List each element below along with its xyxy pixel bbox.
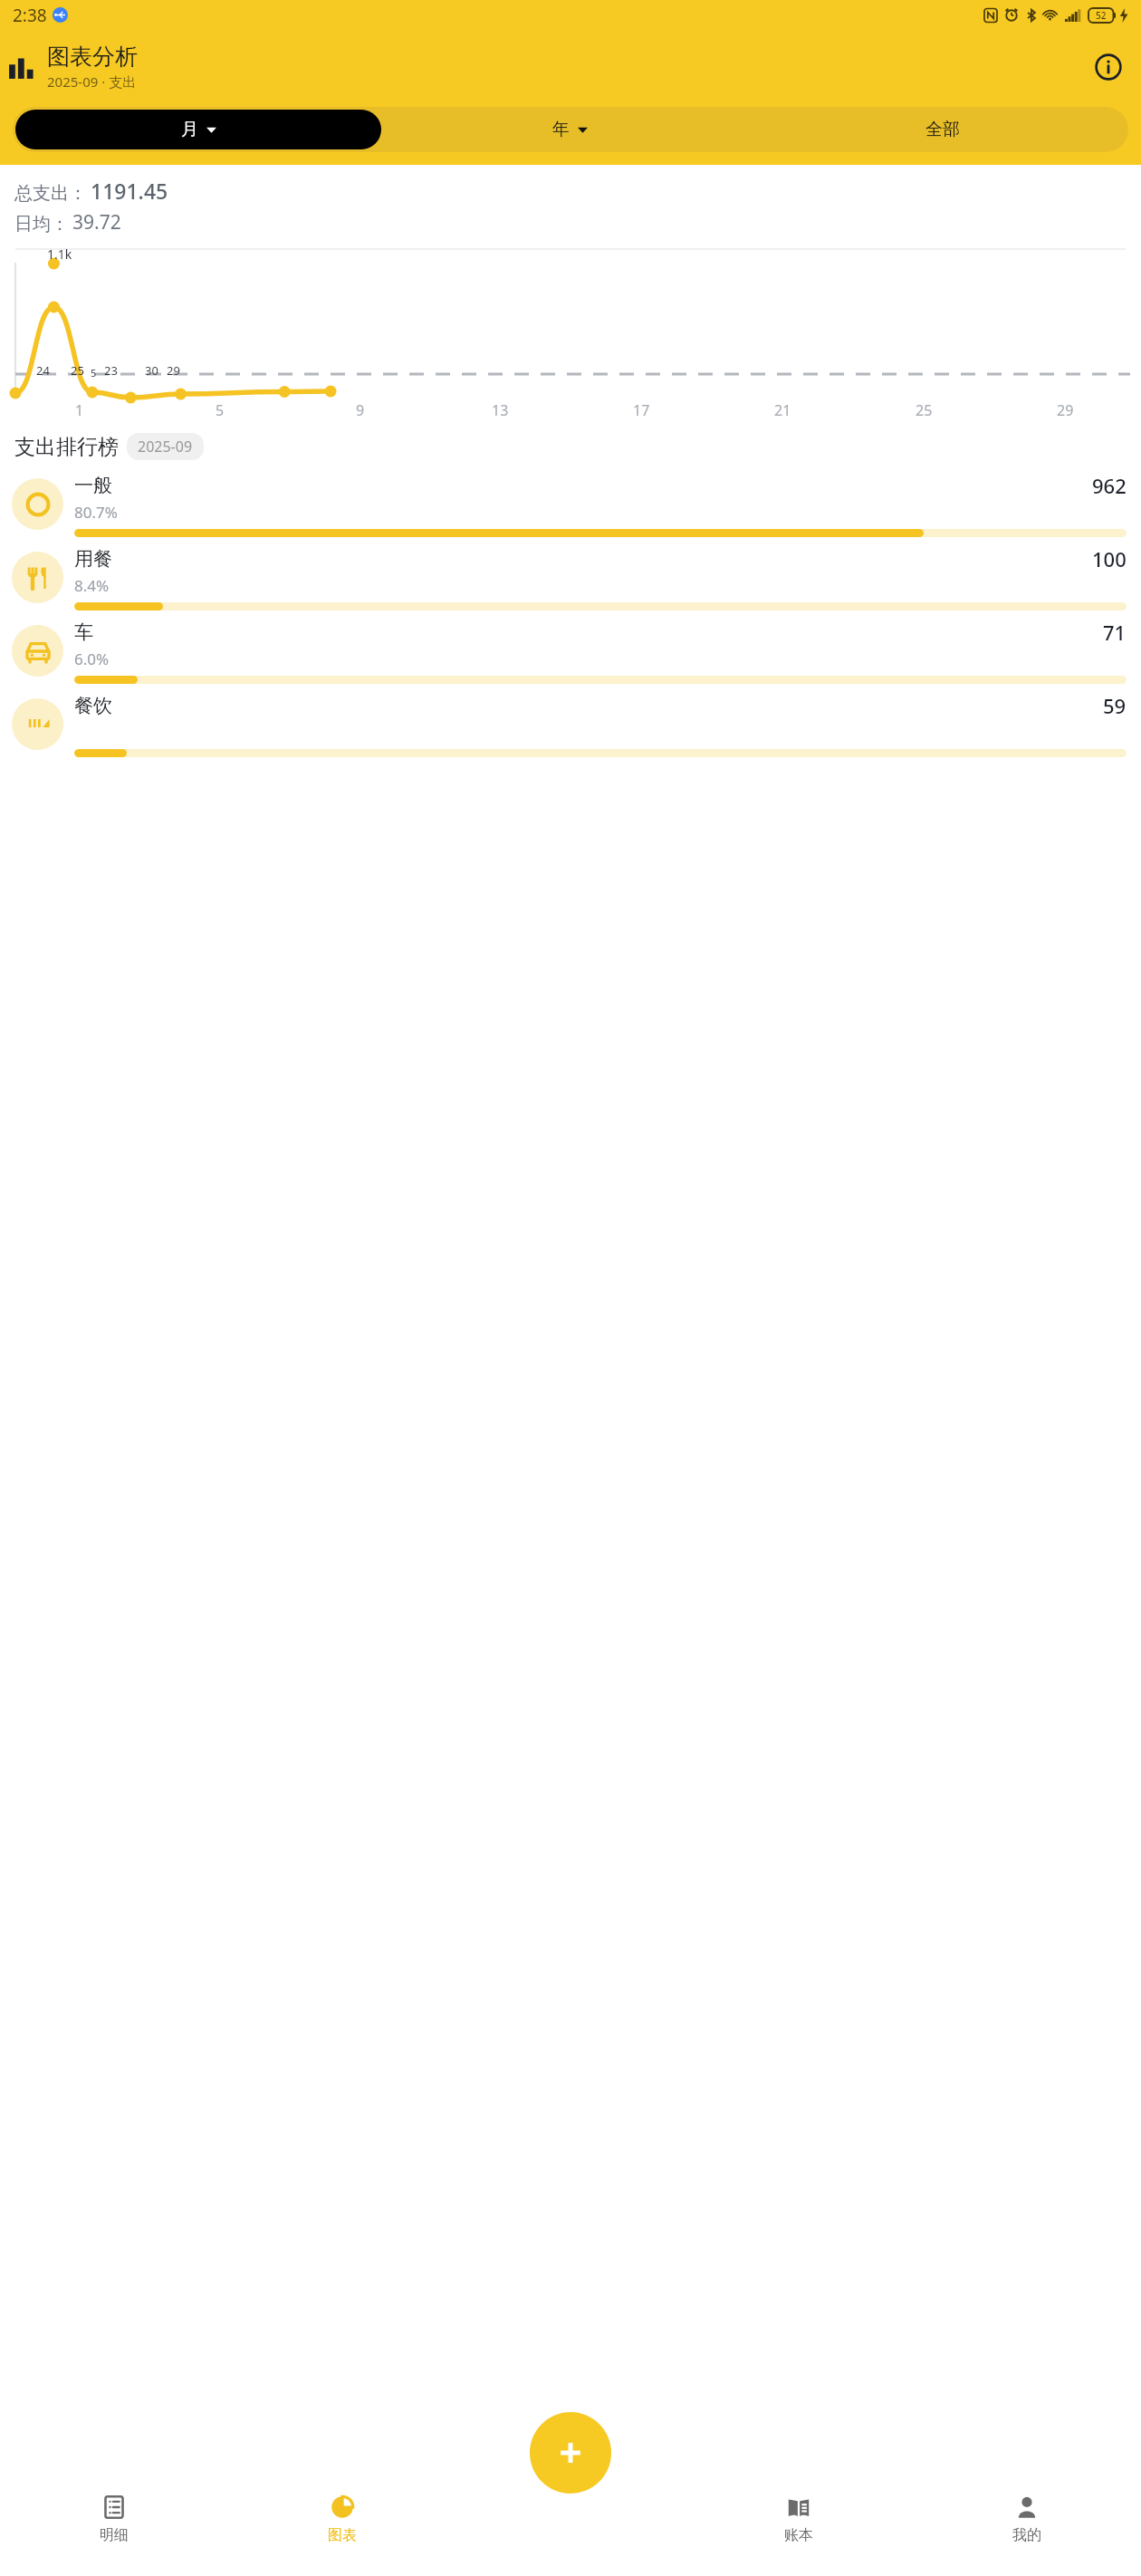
button[interactable]: 图表: [228, 2493, 456, 2546]
button[interactable]: 明细: [0, 2493, 228, 2546]
staticText: 29: [167, 362, 180, 379]
staticText: 5: [216, 400, 225, 420]
staticText: 明细: [100, 2526, 129, 2544]
staticText: 80.7%: [74, 502, 118, 523]
staticText: 6.0%: [74, 649, 110, 669]
button[interactable]: 月: [15, 110, 381, 149]
staticText: 年: [552, 119, 570, 140]
staticText: 25: [71, 362, 84, 379]
staticText: 日均：: [14, 213, 69, 235]
staticText: 17: [633, 400, 650, 420]
staticText: 25: [916, 400, 933, 420]
staticText: 1191.45: [91, 177, 168, 205]
staticText: 39.72: [72, 209, 121, 235]
staticText: 29: [1057, 400, 1074, 420]
staticText: 1.1k: [47, 245, 72, 263]
staticText: 图表: [328, 2526, 357, 2544]
staticText: 2025-09 · 支出: [47, 72, 137, 91]
button[interactable]: 用餐: [0, 541, 1141, 614]
staticText: 支出排行榜: [14, 434, 119, 460]
staticText: 我的: [1012, 2526, 1041, 2544]
staticText: 52: [1096, 9, 1107, 22]
staticText: 962: [1092, 472, 1127, 499]
staticText: 1: [75, 400, 84, 420]
staticText: 一般: [74, 474, 112, 497]
staticText: 车: [74, 620, 93, 644]
staticText: 24: [36, 362, 50, 379]
staticText: 21: [774, 400, 791, 420]
staticText: 总支出：: [14, 182, 87, 205]
staticText: 账本: [784, 2526, 813, 2544]
staticText: 9: [356, 400, 365, 420]
button[interactable]: 年: [384, 107, 756, 152]
staticText: 用餐: [74, 547, 112, 571]
button[interactable]: 餐饮: [0, 687, 1141, 761]
staticText: 2025-09: [138, 437, 193, 457]
staticText: 100: [1092, 545, 1127, 572]
button[interactable]: 全部: [756, 107, 1128, 152]
button[interactable]: 我的: [913, 2493, 1141, 2546]
staticText: 59: [1103, 692, 1127, 719]
staticText: 餐饮: [74, 694, 112, 717]
staticText: 71: [1103, 619, 1127, 646]
button[interactable]: Add record: [530, 2412, 611, 2494]
button[interactable]: 账本: [685, 2493, 913, 2546]
staticText: 13: [492, 400, 509, 420]
staticText: 月: [181, 119, 198, 140]
staticText: 2:38: [13, 4, 47, 27]
staticText: 5: [91, 366, 97, 380]
button[interactable]: Info: [1088, 47, 1128, 87]
button[interactable]: 一般: [0, 467, 1141, 541]
staticText: 30: [145, 362, 158, 379]
staticText: 全部: [925, 119, 960, 140]
staticText: 图表分析: [47, 43, 138, 71]
staticText: 8.4%: [74, 575, 110, 596]
staticText: 23: [104, 362, 118, 379]
button[interactable]: 车: [0, 614, 1141, 687]
